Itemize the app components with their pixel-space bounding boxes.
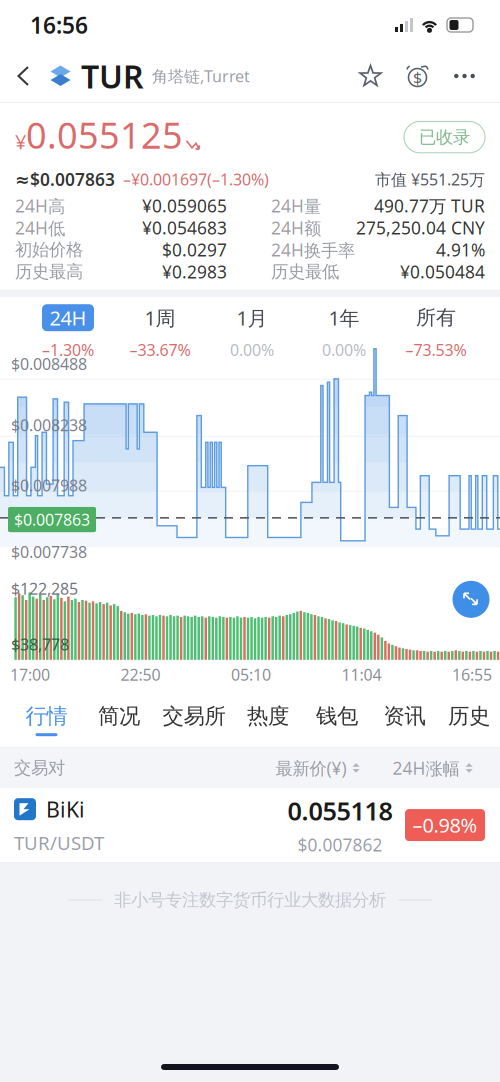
staticText: 已收录 <box>419 126 470 148</box>
button[interactable]: More options <box>431 50 478 102</box>
staticText: 17:00 <box>10 664 50 685</box>
staticText: 钱包 <box>316 703 358 729</box>
button[interactable]: Add to favorites <box>357 50 384 102</box>
staticText: 所有 <box>416 305 456 330</box>
staticText: 历史最低 <box>271 261 339 282</box>
staticText: 0.00% <box>322 339 366 360</box>
button[interactable]: BiKi <box>0 788 500 862</box>
staticText: 1年 <box>328 304 359 331</box>
button[interactable]: 1周 <box>114 301 206 363</box>
staticText: 16:56 <box>30 10 88 40</box>
button[interactable]: 行情 <box>10 691 83 747</box>
staticText: 24H高 <box>15 194 65 217</box>
staticText: TUR <box>81 55 144 97</box>
staticText: 275,250.04 CNY <box>356 216 485 239</box>
staticText: ¥0.054683 <box>142 216 227 239</box>
staticText: 交易对 <box>14 757 65 779</box>
staticText: TUR/USDT <box>14 830 104 855</box>
staticText: –1.30% <box>42 339 94 360</box>
staticText: $0.0297 <box>162 238 227 261</box>
staticText: $0.007738 <box>11 541 87 562</box>
staticText: 历史 <box>448 703 490 729</box>
staticText: 16:55 <box>452 664 492 685</box>
staticText: 1月 <box>236 304 267 331</box>
button[interactable]: 所有 <box>390 301 482 363</box>
button[interactable]: 24H <box>22 301 114 363</box>
staticText: 热度 <box>247 703 289 729</box>
button[interactable]: 交易所 <box>155 691 233 747</box>
staticText: 24H低 <box>15 216 65 239</box>
staticText: $0.007988 <box>11 475 87 496</box>
button[interactable]: 24H涨幅 <box>378 751 488 785</box>
button[interactable]: 历史 <box>438 691 500 747</box>
button[interactable]: 钱包 <box>303 691 371 747</box>
staticText: ¥0.2983 <box>162 260 227 283</box>
button[interactable]: 1年 <box>298 301 390 363</box>
button[interactable]: 资讯 <box>371 691 438 747</box>
staticText: ≈$0.007863 <box>15 168 115 191</box>
staticText: 4.91% <box>436 238 485 261</box>
staticText: 简况 <box>98 703 140 729</box>
staticText: 非小号专注数字货币行业大数据分析 <box>114 889 386 911</box>
staticText: 最新价(¥) <box>275 757 346 780</box>
staticText: 24H <box>49 304 86 331</box>
staticText: 行情 <box>25 703 67 729</box>
staticText: ¥0.050484 <box>400 260 485 283</box>
staticText: $ <box>413 67 422 88</box>
button[interactable]: Expand chart to fullscreen <box>448 576 494 622</box>
staticText: 0.055125 <box>26 111 183 159</box>
staticText: 0.00% <box>230 339 274 360</box>
staticText: 资讯 <box>383 703 425 729</box>
staticText: 0.055118 <box>287 794 392 827</box>
button[interactable]: Back <box>0 50 48 102</box>
staticText: ¥ <box>15 128 26 155</box>
staticText: 交易所 <box>162 703 225 729</box>
staticText: –¥0.001697(–1.30%) <box>123 169 269 190</box>
staticText: 22:50 <box>120 664 160 685</box>
staticText: $0.007863 <box>14 509 90 530</box>
button[interactable]: 1月 <box>206 301 298 363</box>
staticText: –0.98% <box>412 812 477 838</box>
staticText: 24H额 <box>271 216 321 239</box>
staticText: 24H涨幅 <box>392 756 459 780</box>
staticText: $38,778 <box>11 634 69 655</box>
staticText: $122,285 <box>11 578 78 599</box>
button[interactable]: 简况 <box>83 691 155 747</box>
staticText: –73.53% <box>405 339 466 360</box>
button[interactable]: 最新价(¥) <box>258 751 378 785</box>
staticText: –33.67% <box>129 339 190 360</box>
staticText: 初始价格 <box>15 239 83 260</box>
staticText: $0.008488 <box>11 353 87 374</box>
staticText: 490.77万 TUR <box>374 194 485 217</box>
staticText: 24H换手率 <box>271 238 355 261</box>
button[interactable]: 已收录 <box>404 121 485 159</box>
staticText: 历史最高 <box>15 261 83 282</box>
staticText: $0.007862 <box>297 833 382 856</box>
staticText: 角塔链,Turret <box>152 65 250 87</box>
staticText: ¥0.059065 <box>142 194 227 217</box>
staticText: 24H量 <box>271 194 321 217</box>
staticText: 11:04 <box>341 664 381 685</box>
button[interactable]: Price alert <box>384 50 431 102</box>
staticText: $0.008238 <box>11 414 87 436</box>
staticText: 市值 ¥551.25万 <box>375 169 485 190</box>
staticText: 1周 <box>144 304 175 331</box>
staticText: 05:10 <box>231 664 271 685</box>
staticText: BiKi <box>46 795 85 823</box>
button[interactable]: 热度 <box>233 691 303 747</box>
